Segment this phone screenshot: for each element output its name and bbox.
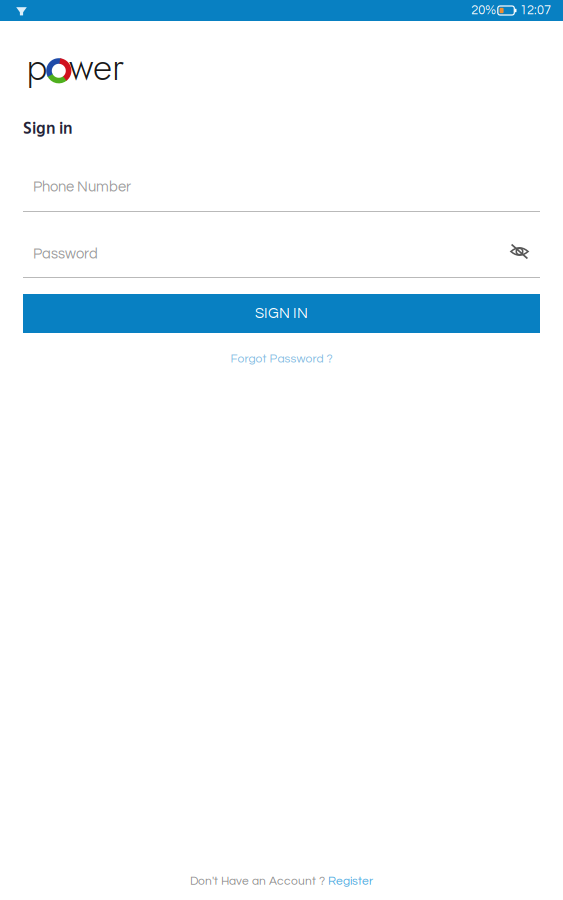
staticText: Password	[33, 246, 98, 261]
staticText: Sign in	[23, 116, 72, 143]
button[interactable]: SIGN IN	[23, 294, 540, 333]
button[interactable]: Register	[325, 875, 373, 887]
staticText: Phone Number	[33, 179, 131, 194]
button[interactable]: Forgot Password ?	[23, 333, 540, 365]
staticText: Don't Have an Account ?	[190, 875, 325, 887]
button[interactable]: Show password	[504, 240, 540, 268]
staticText: 12:07	[520, 4, 551, 17]
staticText: p	[26, 40, 47, 94]
staticText: Forgot Password ?	[230, 353, 332, 365]
staticText: wer	[69, 40, 124, 94]
staticText: SIGN IN	[255, 306, 308, 321]
staticText: Register	[325, 875, 373, 887]
staticText: 20%	[471, 4, 496, 17]
